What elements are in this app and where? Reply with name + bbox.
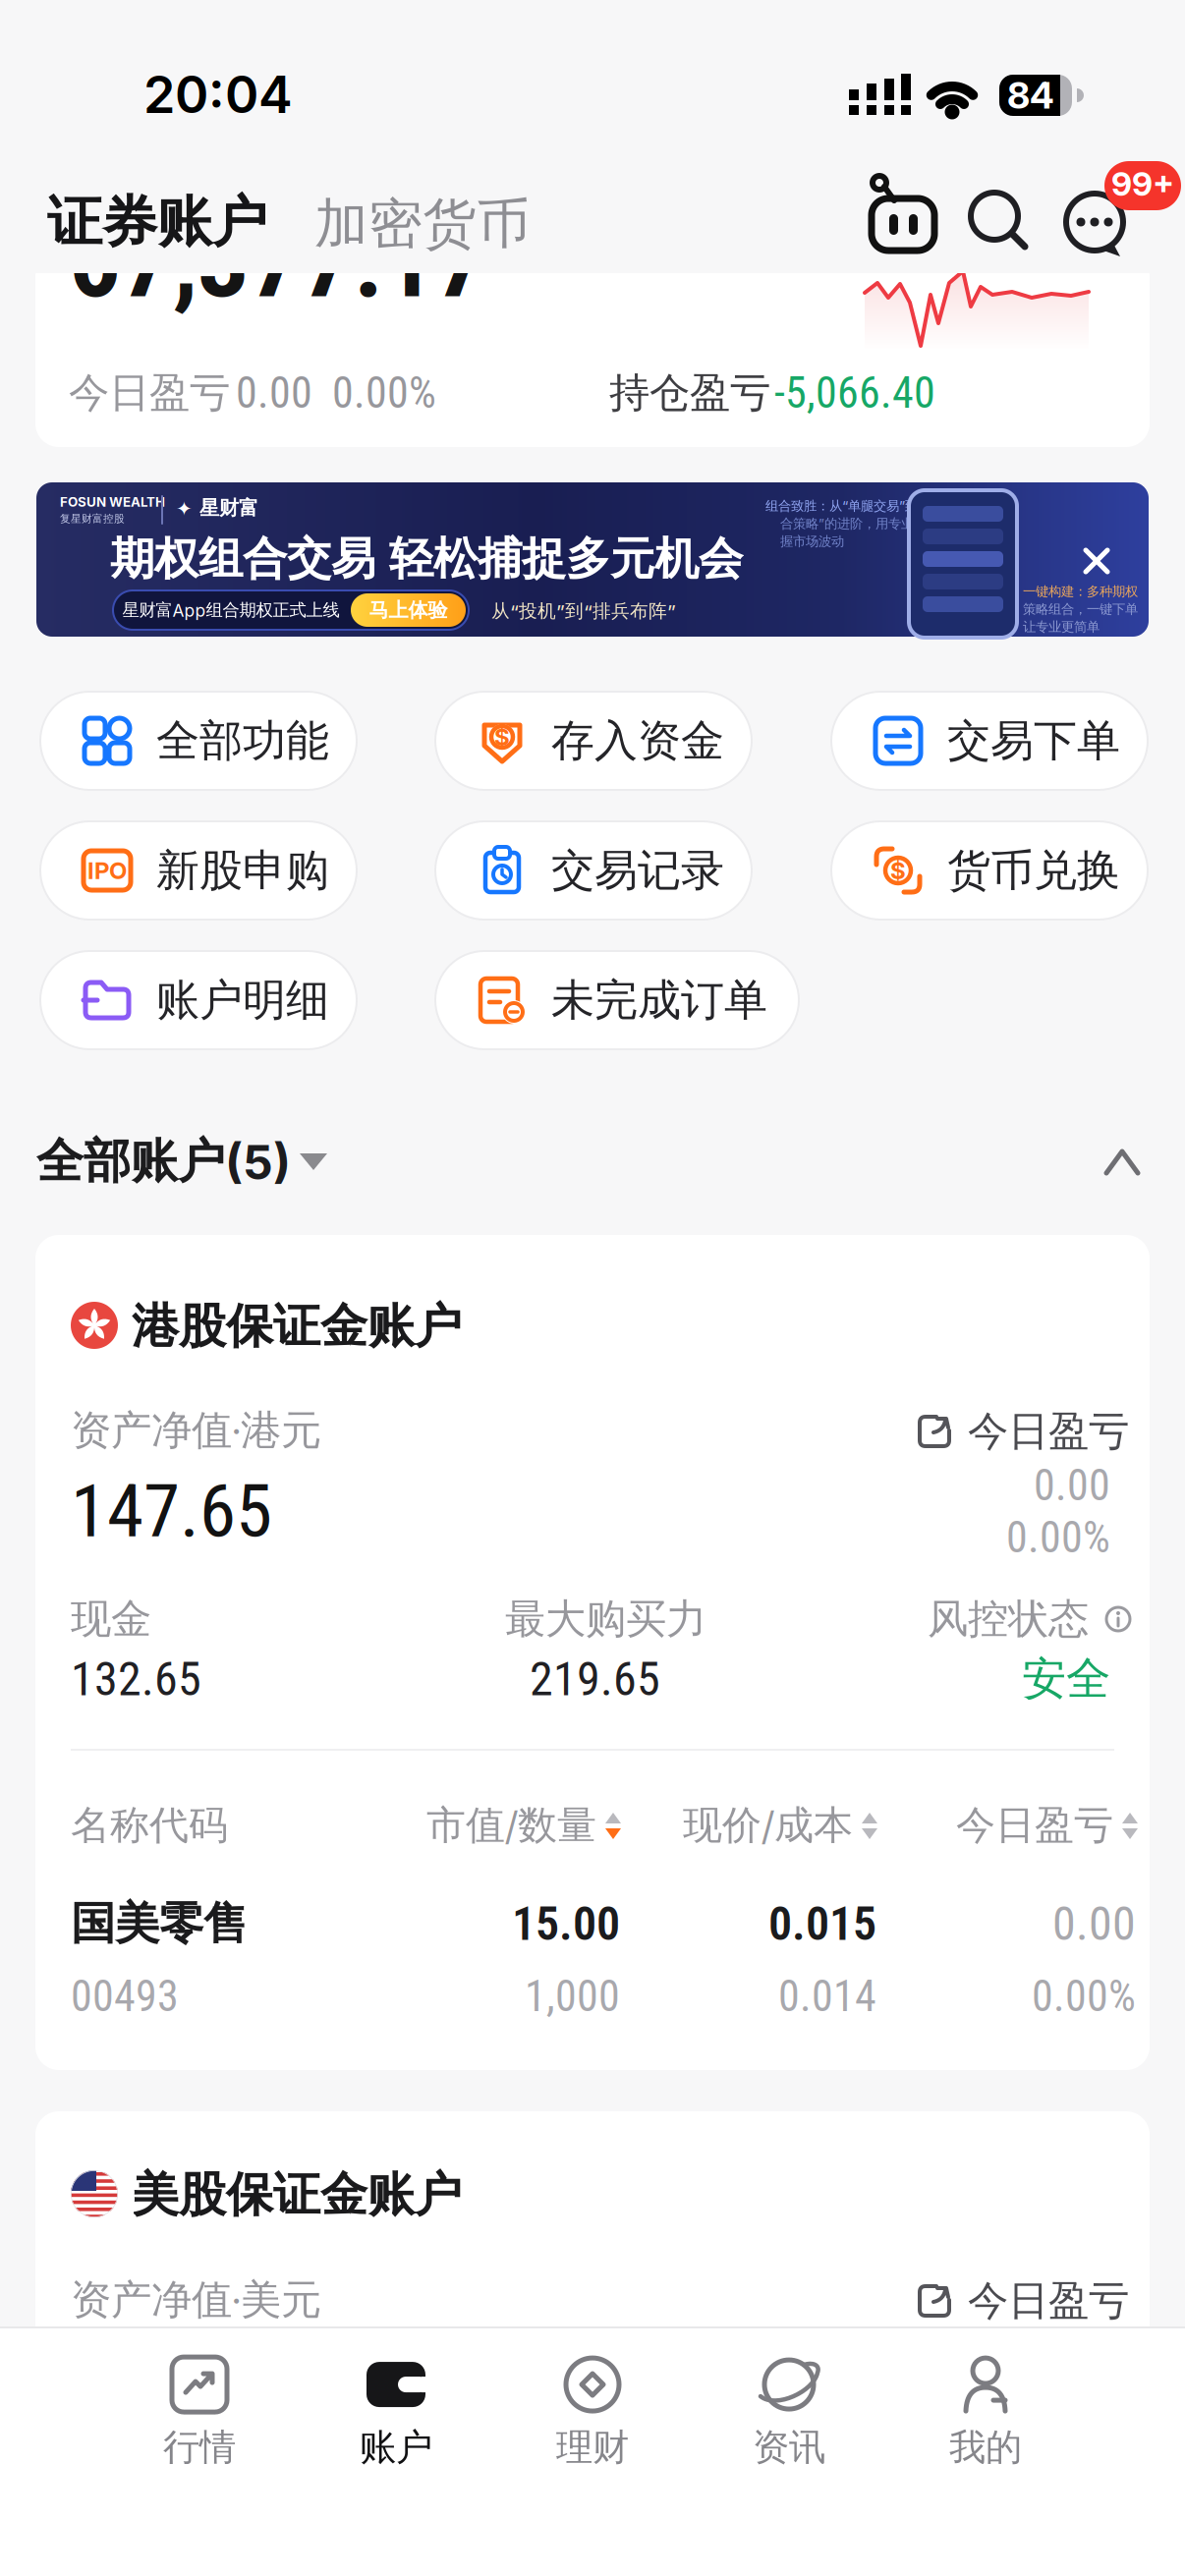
staticText: 全部账户(5)	[36, 1132, 291, 1190]
staticText: 0.014	[778, 1971, 876, 2022]
staticText: 今日盈亏	[69, 368, 230, 418]
staticText: 安全	[1022, 1652, 1110, 1706]
staticText: 219.65	[530, 1651, 660, 1707]
staticText: 市值/数量	[426, 1801, 596, 1849]
staticText: 15.00	[512, 1896, 620, 1951]
staticText: 全部功能	[156, 714, 329, 767]
staticText: 0.00 0.00%	[236, 368, 436, 418]
staticText: FOSUN WEALTH	[60, 494, 165, 510]
staticText: $	[494, 723, 510, 751]
button[interactable]: 关闭	[1074, 538, 1119, 584]
staticText: 现金	[71, 1594, 151, 1644]
staticText: 0.00	[1034, 1460, 1110, 1511]
staticText: 今日盈亏	[968, 2276, 1129, 2326]
button[interactable]: 市值/数量	[431, 1802, 620, 1849]
staticText: 0.00%	[1006, 1512, 1110, 1563]
staticText: 国美零售	[71, 1896, 248, 1951]
staticText: 147.65	[71, 1468, 272, 1554]
button[interactable]: 行情	[101, 2346, 298, 2476]
staticText: 今日盈亏	[956, 1801, 1113, 1849]
staticText: 我的	[949, 2425, 1022, 2470]
staticText: 行情	[163, 2425, 236, 2470]
staticText: 货币兑换	[947, 844, 1120, 897]
button[interactable]: 今日盈亏 分享	[917, 2279, 1145, 2323]
button[interactable]: AI 助手	[869, 173, 937, 252]
staticText: 持仓盈亏	[609, 368, 770, 418]
button[interactable]: 国美零售	[71, 1894, 1136, 2032]
staticText: 1,000	[525, 1971, 620, 2022]
staticText: 最大购买力	[505, 1594, 706, 1644]
staticText: 资讯	[753, 2425, 825, 2470]
button[interactable]: $	[435, 692, 752, 790]
staticText: -5,066.40	[774, 368, 935, 418]
staticText: 未完成订单	[551, 974, 767, 1027]
staticText: 从“投机”到“排兵布阵”	[491, 600, 676, 622]
staticText: 现价/成本	[683, 1801, 853, 1849]
button[interactable]: 账户	[298, 2346, 494, 2476]
button[interactable]: 组合致胜：从“单腿交易”到“组	[36, 482, 1149, 637]
staticText: 账户	[360, 2425, 432, 2470]
button[interactable]: 现价/成本	[688, 1802, 876, 1849]
staticText: 资产净值·美元	[71, 2275, 321, 2325]
staticText: 加密货币	[314, 191, 531, 257]
staticText: 67,377.17	[69, 202, 487, 321]
staticText: 复星财富控股	[60, 512, 125, 525]
staticText: 0.015	[768, 1896, 876, 1951]
button[interactable]: $	[831, 821, 1148, 920]
button[interactable]: 资讯	[691, 2346, 887, 2476]
button[interactable]: 理财	[494, 2346, 691, 2476]
staticText: 20:04	[143, 64, 293, 124]
staticText: 新股申购	[156, 844, 329, 897]
staticText: 合策略”的进阶，用专业策略把	[780, 516, 952, 532]
staticText: 0.00%	[1032, 1971, 1136, 2022]
staticText: 交易下单	[947, 714, 1120, 767]
button[interactable]: 证券账户	[47, 185, 342, 259]
staticText: 00493	[71, 1971, 179, 2022]
staticText: 99+	[1111, 164, 1174, 203]
staticText: 港股保证金账户	[132, 1297, 462, 1355]
staticText: 存入资金	[551, 714, 724, 767]
staticText: 马上体验	[369, 598, 448, 622]
button[interactable]: 全部账户(5)	[36, 1132, 331, 1191]
staticText: 名称代码	[71, 1801, 228, 1849]
staticText: 风控状态	[928, 1594, 1089, 1644]
staticText: 证券账户	[47, 188, 267, 256]
button[interactable]: 今日盈亏	[948, 1802, 1137, 1849]
button[interactable]: 全部功能	[40, 692, 357, 790]
staticText: 账户明细	[156, 974, 329, 1027]
staticText: 0.00	[1052, 1896, 1136, 1951]
button[interactable]: 未完成订单	[435, 951, 799, 1049]
staticText: $	[890, 857, 906, 884]
button[interactable]: 搜索	[968, 190, 1031, 252]
staticText: ✦ 星财富	[176, 496, 258, 520]
staticText: 资产净值·港元	[71, 1406, 321, 1455]
button[interactable]: 消息	[1061, 159, 1183, 259]
button[interactable]: 今日盈亏 分享	[917, 1410, 1145, 1453]
staticText: 今日盈亏	[968, 1406, 1129, 1456]
button[interactable]: 收起	[1102, 1144, 1142, 1181]
button[interactable]: 我的	[887, 2346, 1084, 2476]
staticText: 策略组合，一键下单	[1023, 601, 1138, 617]
button[interactable]: IPO	[40, 821, 357, 920]
button[interactable]: 交易记录	[435, 821, 752, 920]
staticText: 132.65	[71, 1651, 201, 1707]
staticText: 理财	[556, 2425, 629, 2470]
staticText: 握市场波动	[780, 533, 844, 549]
staticText: 84	[1007, 74, 1054, 117]
staticText: 星财富App组合期权正式上线	[122, 600, 339, 621]
button[interactable]: 风控状态说明	[1104, 1605, 1132, 1633]
staticText: 让专业更简单	[1023, 619, 1100, 635]
staticText: 一键构建：多种期权	[1023, 583, 1138, 599]
button[interactable]: 账户明细	[40, 951, 357, 1049]
button[interactable]: 交易下单	[831, 692, 1148, 790]
button[interactable]: 加密货币	[314, 187, 609, 261]
staticText: 美股保证金账户	[132, 2166, 462, 2224]
staticText: 组合致胜：从“单腿交易”到“组	[765, 498, 936, 514]
staticText: 期权组合交易 轻松捕捉多元机会	[110, 532, 743, 586]
staticText: IPO	[87, 857, 127, 884]
staticText: 交易记录	[551, 844, 724, 897]
